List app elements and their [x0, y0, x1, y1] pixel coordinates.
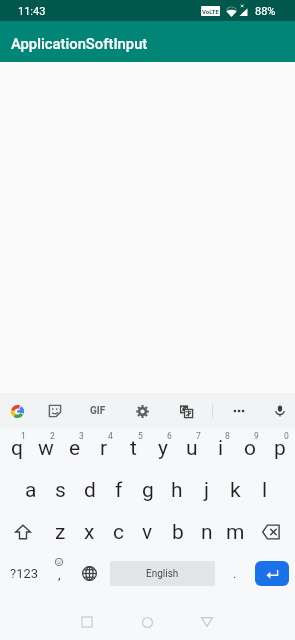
- staticText: p: [274, 436, 286, 461]
- staticText: s: [55, 478, 66, 503]
- button[interactable]: r: [89, 428, 118, 468]
- button[interactable]: Emoji: [45, 554, 73, 592]
- button[interactable]: s: [46, 470, 75, 510]
- button[interactable]: More options: [226, 398, 252, 424]
- staticText: 8: [225, 431, 230, 441]
- staticText: m: [226, 520, 245, 545]
- button[interactable]: Settings: [129, 398, 155, 424]
- button[interactable]: Voice input: [267, 398, 293, 424]
- staticText: ApplicationSoftInput: [11, 35, 148, 52]
- staticText: h: [171, 478, 183, 503]
- button[interactable]: a: [16, 470, 45, 510]
- button[interactable]: f: [104, 470, 133, 510]
- staticText: .: [233, 566, 237, 581]
- button[interactable]: h: [162, 470, 191, 510]
- button[interactable]: v: [133, 512, 162, 552]
- staticText: c: [113, 520, 124, 545]
- button[interactable]: m: [221, 512, 250, 552]
- button[interactable]: Stickers: [42, 398, 68, 424]
- button[interactable]: j: [192, 470, 221, 510]
- staticText: 1: [21, 431, 26, 441]
- staticText: l: [262, 478, 268, 503]
- button[interactable]: z: [46, 512, 75, 552]
- button[interactable]: Recent apps: [73, 608, 101, 636]
- button[interactable]: .: [221, 554, 249, 592]
- button[interactable]: w: [31, 428, 60, 468]
- staticText: 7: [196, 431, 201, 441]
- staticText: r: [100, 436, 108, 461]
- staticText: ?123: [10, 566, 39, 581]
- staticText: g: [142, 478, 154, 503]
- staticText: n: [201, 520, 213, 545]
- button[interactable]: g: [133, 470, 162, 510]
- staticText: w: [38, 436, 54, 461]
- staticText: o: [244, 436, 256, 461]
- button[interactable]: n: [192, 512, 221, 552]
- staticText: ,: [58, 567, 61, 582]
- staticText: b: [172, 520, 184, 545]
- button[interactable]: u: [177, 428, 206, 468]
- staticText: k: [230, 478, 241, 503]
- button[interactable]: e: [60, 428, 89, 468]
- button[interactable]: b: [163, 512, 192, 552]
- staticText: English: [146, 568, 179, 580]
- button[interactable]: y: [148, 428, 177, 468]
- staticText: v: [142, 520, 153, 545]
- button[interactable]: Translate: [173, 398, 199, 424]
- button[interactable]: i: [206, 428, 235, 468]
- staticText: d: [84, 478, 96, 503]
- button[interactable]: Google search: [4, 398, 30, 424]
- button[interactable]: English: [110, 561, 215, 586]
- staticText: y: [158, 436, 168, 461]
- button[interactable]: d: [75, 470, 104, 510]
- button[interactable]: Backspace: [253, 512, 289, 552]
- button[interactable]: Shift: [5, 512, 41, 552]
- button[interactable]: o: [235, 428, 264, 468]
- staticText: x: [84, 520, 95, 545]
- staticText: 6: [167, 431, 172, 441]
- staticText: GIF: [90, 405, 106, 417]
- staticText: t: [130, 436, 137, 461]
- staticText: f: [115, 478, 123, 503]
- button[interactable]: q: [2, 428, 31, 468]
- button[interactable]: Back: [193, 608, 221, 636]
- staticText: a: [25, 478, 37, 503]
- button[interactable]: l: [250, 470, 279, 510]
- staticText: 9: [254, 431, 259, 441]
- button[interactable]: Home: [133, 608, 161, 636]
- button[interactable]: t: [119, 428, 148, 468]
- staticText: VoLTE: [202, 8, 219, 15]
- button[interactable]: c: [104, 512, 133, 552]
- staticText: u: [186, 436, 198, 461]
- staticText: 0: [284, 431, 289, 441]
- staticText: 5: [138, 431, 143, 441]
- button[interactable]: p: [265, 428, 294, 468]
- button[interactable]: k: [221, 470, 250, 510]
- staticText: i: [218, 436, 224, 461]
- staticText: 11:43: [18, 5, 46, 18]
- button[interactable]: GIF keyboard: [85, 398, 111, 424]
- staticText: q: [11, 436, 23, 461]
- button[interactable]: Change keyboard language: [75, 554, 103, 592]
- staticText: 2: [50, 431, 55, 441]
- staticText: 88%: [255, 5, 276, 18]
- button[interactable]: ?123: [4, 554, 44, 592]
- button[interactable]: Enter: [255, 561, 289, 586]
- staticText: 4: [108, 431, 113, 441]
- staticText: z: [55, 520, 66, 545]
- staticText: j: [204, 478, 210, 503]
- staticText: e: [69, 436, 81, 461]
- button[interactable]: x: [75, 512, 104, 552]
- staticText: 3: [79, 431, 84, 441]
